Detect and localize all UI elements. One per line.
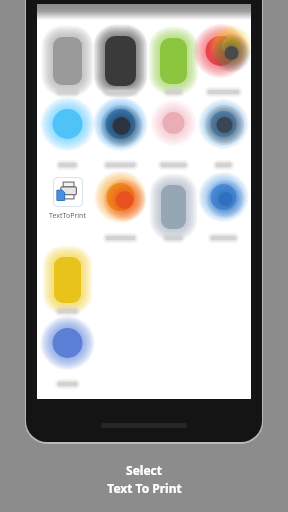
staticText: Text To Print	[107, 480, 182, 496]
button[interactable]: App	[200, 98, 247, 170]
button[interactable]: App	[41, 244, 94, 316]
button[interactable]: App	[147, 98, 200, 170]
button[interactable]: App	[41, 98, 94, 170]
button[interactable]: App	[200, 25, 247, 97]
button[interactable]: App	[94, 171, 147, 243]
staticText: TextToPrint	[49, 211, 86, 221]
button[interactable]: App	[200, 171, 247, 243]
button[interactable]: App	[147, 171, 200, 243]
staticText: Select	[126, 462, 162, 478]
button[interactable]: App	[94, 25, 147, 97]
button[interactable]: TextToPrint	[41, 171, 94, 243]
button[interactable]: App	[147, 25, 200, 97]
button[interactable]: App	[41, 25, 94, 97]
button[interactable]: App	[94, 98, 147, 170]
button[interactable]: App	[41, 317, 94, 389]
